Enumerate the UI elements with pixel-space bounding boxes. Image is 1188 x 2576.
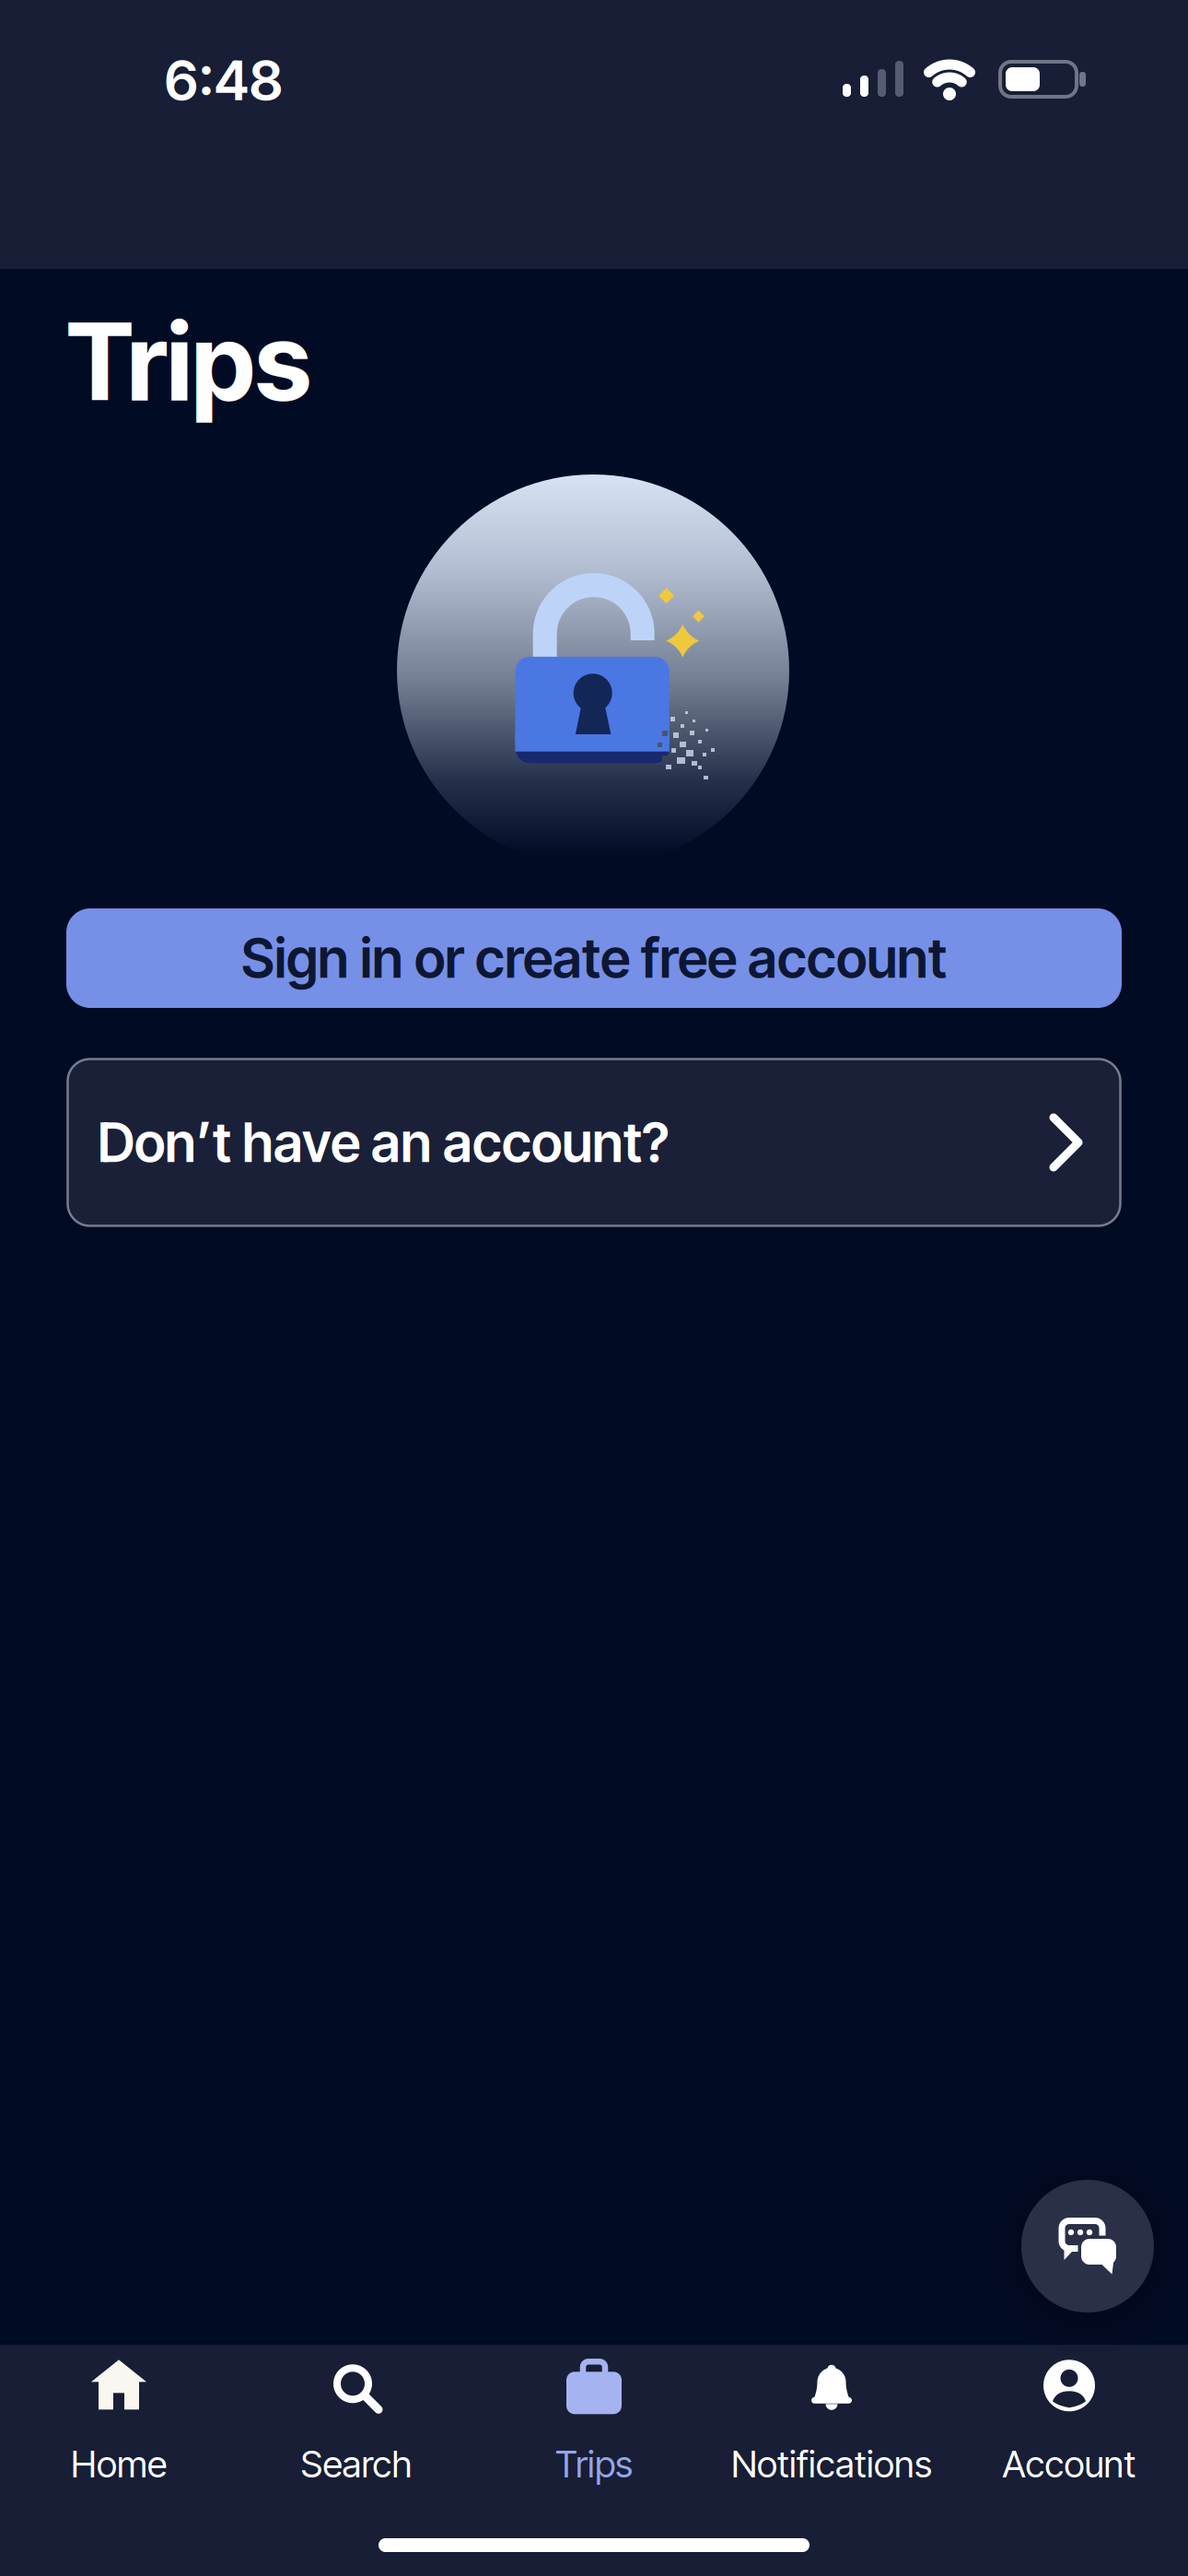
button[interactable]: Account [951,2348,1187,2496]
staticText: Notifications [731,2442,932,2486]
button[interactable]: Trips [476,2348,712,2496]
button[interactable]: Search [239,2348,474,2496]
staticText: Trips [555,2442,633,2486]
staticText: Search [301,2442,412,2486]
staticText: Account [1002,2442,1136,2486]
staticText: Home [71,2442,167,2486]
button[interactable]: Home [1,2348,237,2496]
button[interactable]: Notifications [714,2348,949,2496]
button[interactable]: Sign in or create free account [66,908,1122,1008]
button[interactable]: Chat support [1021,2180,1154,2313]
staticText: Don’t have an account? [98,1110,670,1175]
button[interactable]: Don’t have an account? [66,1058,1122,1227]
staticText: Sign in or create free account [241,925,947,991]
staticText: 6:48 [164,47,283,114]
staticText: Trips [66,298,311,426]
